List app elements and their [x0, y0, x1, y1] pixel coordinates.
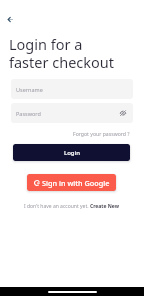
staticText: Sign in with Google	[42, 178, 110, 188]
staticText: I don't have an account yet.	[24, 203, 90, 210]
button[interactable]: Sign in with Google	[27, 174, 116, 191]
button[interactable]: Login	[13, 144, 130, 161]
button[interactable]: Back	[2, 11, 18, 27]
staticText: faster checkout	[9, 52, 115, 72]
staticText: Login for a	[9, 34, 83, 54]
staticText: Password	[16, 110, 41, 117]
button[interactable]: Username	[11, 79, 133, 99]
staticText: Forgot your password ?	[73, 130, 130, 137]
button[interactable]: Forgot your password ?	[72, 129, 131, 138]
staticText: Create New	[90, 203, 120, 210]
button[interactable]: Password	[11, 103, 133, 123]
button[interactable]: Create New	[90, 203, 120, 210]
staticText: Username	[16, 86, 43, 93]
button[interactable]: Show password	[115, 105, 131, 121]
staticText: Login	[64, 149, 80, 157]
